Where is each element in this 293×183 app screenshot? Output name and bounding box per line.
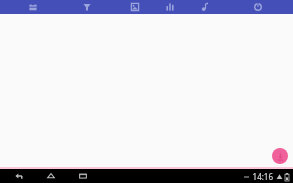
button[interactable]: Photo [111, 0, 152, 14]
button[interactable]: Chart [152, 0, 187, 14]
button[interactable]: Power [230, 0, 293, 14]
button[interactable]: Home [44, 169, 58, 183]
button[interactable]: Download [272, 148, 288, 164]
button[interactable]: Filter [60, 0, 111, 14]
button[interactable]: Recent apps [76, 169, 90, 183]
button[interactable]: Briefcase [0, 0, 60, 14]
button[interactable]: Note [187, 0, 230, 14]
staticText: 14:16 [252, 171, 273, 182]
button[interactable]: Back [12, 169, 26, 183]
